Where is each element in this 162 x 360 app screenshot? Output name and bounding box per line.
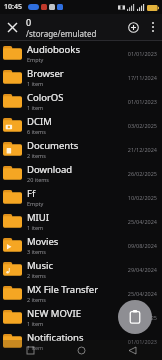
button[interactable]: Back bbox=[124, 342, 140, 358]
staticText: 1 item bbox=[27, 320, 44, 327]
button[interactable]: Close bbox=[2, 17, 22, 37]
staticText: 6 items bbox=[27, 128, 46, 135]
staticText: 2 items bbox=[27, 296, 46, 303]
staticText: NEW MOVIE bbox=[27, 307, 81, 320]
staticText: Ff bbox=[27, 187, 36, 200]
staticText: Audiobooks bbox=[27, 43, 80, 56]
staticText: MX File Transfer bbox=[27, 283, 99, 296]
button[interactable]: Music bbox=[0, 257, 162, 281]
staticText: 0 bbox=[26, 16, 32, 28]
button[interactable]: DCIM bbox=[0, 113, 162, 137]
button[interactable]: Add bbox=[122, 16, 144, 38]
button[interactable]: Browser bbox=[0, 65, 162, 89]
staticText: 21/12/2024 bbox=[127, 146, 157, 153]
button[interactable]: Download bbox=[0, 161, 162, 185]
staticText: 10/02/2025 bbox=[127, 194, 157, 201]
button[interactable]: Audiobooks bbox=[0, 41, 162, 65]
button[interactable]: Ff bbox=[0, 185, 162, 209]
button[interactable]: ColorOS bbox=[0, 89, 162, 113]
button[interactable]: MX File Transfer bbox=[0, 281, 162, 305]
staticText: ColorOS bbox=[27, 91, 64, 104]
staticText: 10:45 bbox=[4, 2, 22, 12]
staticText: 1 item bbox=[27, 224, 44, 231]
staticText: 1 item bbox=[27, 104, 44, 111]
staticText: 01/01/2023 bbox=[127, 50, 157, 57]
button[interactable]: NEW MOVIE bbox=[0, 305, 162, 329]
staticText: /storage/emulated bbox=[26, 28, 97, 39]
staticText: 17/11/2024 bbox=[127, 74, 157, 81]
button[interactable]: MIUI bbox=[0, 209, 162, 233]
staticText: 25/04/2024 bbox=[127, 290, 157, 297]
staticText: 1 item bbox=[27, 80, 44, 87]
button[interactable]: Movies bbox=[0, 233, 162, 257]
staticText: Music bbox=[27, 259, 54, 272]
staticText: Notifications bbox=[27, 331, 84, 344]
button[interactable]: Notifications bbox=[0, 329, 162, 353]
staticText: 01/01/2023 bbox=[127, 98, 157, 105]
staticText: Empty bbox=[27, 200, 44, 207]
staticText: MIUI bbox=[27, 211, 50, 224]
button[interactable]: Recents bbox=[22, 342, 38, 358]
button[interactable]: Documents bbox=[0, 137, 162, 161]
button[interactable]: Paste bbox=[118, 300, 152, 334]
staticText: Movies bbox=[27, 235, 59, 248]
staticText: 09/08/2024 bbox=[127, 242, 157, 249]
button[interactable]: Home bbox=[73, 342, 89, 358]
staticText: 20 items bbox=[27, 176, 50, 183]
button[interactable]: More options bbox=[144, 18, 162, 36]
staticText: DCIM bbox=[27, 115, 52, 128]
staticText: 29/04/2024 bbox=[127, 266, 157, 273]
staticText: Documents bbox=[27, 139, 79, 152]
staticText: Empty bbox=[27, 56, 44, 63]
staticText: 2 items bbox=[27, 152, 46, 159]
staticText: 2 items bbox=[27, 272, 46, 279]
staticText: 26/02/2025 bbox=[127, 170, 157, 177]
staticText: 1 item bbox=[27, 344, 44, 351]
staticText: 03/02/2025 bbox=[127, 122, 157, 129]
staticText: Download bbox=[27, 163, 73, 176]
staticText: Browser bbox=[27, 67, 64, 80]
staticText: 25/04/2024 bbox=[127, 218, 157, 225]
staticText: 3 items bbox=[27, 248, 46, 255]
staticText: 25/05/2025 bbox=[127, 314, 157, 321]
staticText: 01/01/2023 bbox=[127, 338, 157, 345]
